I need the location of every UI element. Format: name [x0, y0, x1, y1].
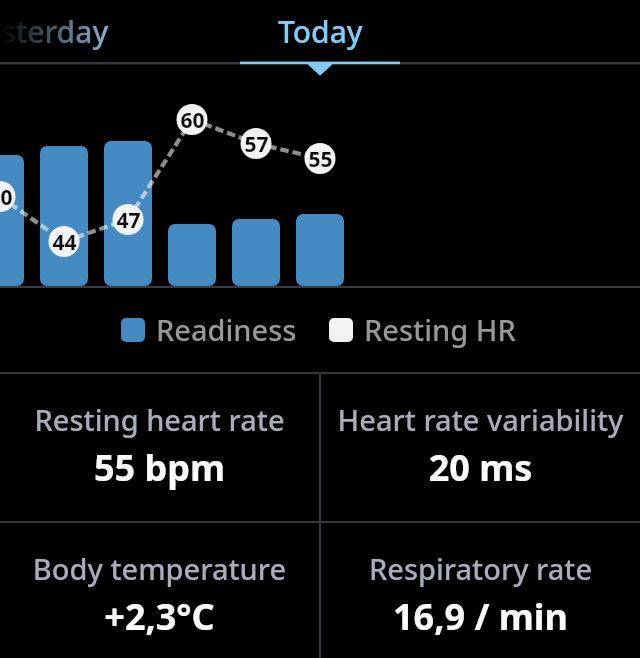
button[interactable]: Resting HR — [329, 310, 516, 349]
button[interactable]: Yesterday — [0, 0, 128, 62]
staticText: Resting HR — [364, 310, 516, 349]
staticText: Heart rate variability — [321, 400, 640, 439]
staticText: 60 — [180, 106, 205, 135]
staticText: Today — [278, 11, 363, 52]
staticText: Resting heart rate — [0, 400, 319, 439]
staticText: Respiratory rate — [321, 549, 640, 588]
staticText: 57 — [244, 130, 269, 159]
button[interactable]: Heart rate variability — [321, 374, 640, 521]
staticText: 44 — [52, 228, 77, 257]
button[interactable]: Today — [240, 0, 400, 62]
staticText: Yesterday — [0, 11, 109, 52]
staticText: 55 — [308, 145, 333, 174]
staticText: +2,3°C — [0, 592, 319, 641]
button[interactable]: Readiness — [121, 310, 297, 349]
staticText: 55 bpm — [0, 443, 319, 492]
button[interactable]: Respiratory rate — [321, 523, 640, 658]
staticText: Body temperature — [0, 549, 319, 588]
staticText: 47 — [116, 206, 141, 235]
other: Readiness and resting heart rate chart — [0, 0, 640, 292]
staticText: Readiness — [156, 310, 297, 349]
button[interactable]: Resting heart rate — [0, 374, 319, 521]
button[interactable]: Body temperature — [0, 523, 319, 658]
staticText: 40 — [0, 183, 13, 212]
staticText: 20 ms — [321, 443, 640, 492]
staticText: 16,9 / min — [321, 592, 640, 641]
